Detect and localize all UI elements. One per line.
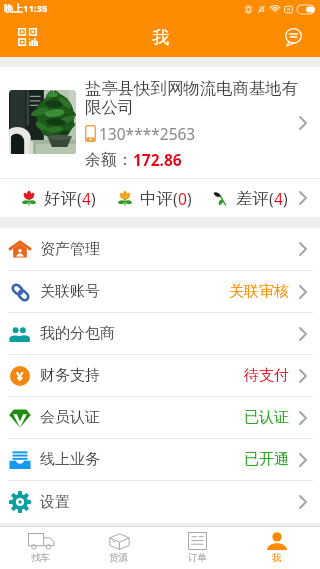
staticText: 已认证 bbox=[244, 408, 289, 427]
button[interactable]: 盐亭县快到网物流电商基地有限公司 bbox=[0, 67, 320, 178]
button[interactable]: ¥ bbox=[0, 355, 320, 397]
staticText: 中评 bbox=[140, 188, 173, 209]
staticText: ) bbox=[187, 188, 192, 209]
staticText: ( bbox=[269, 188, 274, 209]
staticText: ( bbox=[173, 188, 178, 209]
button[interactable]: 资产管理 bbox=[0, 228, 320, 271]
button[interactable]: 找车 bbox=[2, 527, 80, 569]
staticText: 172.86 bbox=[133, 149, 182, 170]
staticText: ¥ bbox=[16, 367, 24, 385]
staticText: 财务支持 bbox=[40, 366, 244, 385]
staticText: 订单 bbox=[188, 552, 208, 564]
button[interactable]: 差评 bbox=[202, 179, 298, 217]
staticText: ) bbox=[91, 188, 96, 209]
staticText: 关联审核 bbox=[229, 282, 289, 301]
staticText: 我的分包商 bbox=[40, 324, 298, 343]
staticText: 已开通 bbox=[244, 450, 289, 469]
staticText: 4 bbox=[274, 188, 283, 209]
button[interactable]: 线上业务 bbox=[0, 439, 320, 481]
button[interactable]: 订单 bbox=[158, 527, 237, 569]
staticText: 4 bbox=[82, 188, 91, 209]
staticText: 130****2563 bbox=[99, 123, 196, 144]
staticText: 货源 bbox=[109, 552, 129, 564]
button[interactable]: 消息 bbox=[273, 17, 313, 57]
staticText: 0 bbox=[178, 188, 187, 209]
staticText: 会员认证 bbox=[40, 408, 244, 427]
button[interactable]: 货源 bbox=[80, 527, 158, 569]
staticText: 余额： bbox=[85, 150, 133, 170]
staticText: 我 bbox=[152, 27, 169, 48]
button[interactable]: 我 bbox=[237, 527, 316, 569]
staticText: 好评 bbox=[44, 188, 77, 209]
staticText: 关联账号 bbox=[40, 282, 229, 301]
staticText: 线上业务 bbox=[40, 450, 244, 469]
staticText: 我 bbox=[272, 552, 282, 564]
staticText: 待支付 bbox=[244, 366, 289, 385]
staticText: ) bbox=[283, 188, 288, 209]
button[interactable]: 中评 bbox=[106, 179, 202, 217]
button[interactable]: 扫一扫 bbox=[7, 17, 47, 57]
button[interactable]: 设置 bbox=[0, 481, 320, 523]
button[interactable]: 我的分包商 bbox=[0, 313, 320, 355]
button[interactable]: 好评 bbox=[10, 179, 106, 217]
button[interactable]: 关联账号 bbox=[0, 271, 320, 313]
staticText: 差评 bbox=[236, 188, 269, 209]
staticText: 晚上11:35 bbox=[4, 2, 48, 15]
staticText: 找车 bbox=[31, 552, 51, 564]
staticText: 设置 bbox=[40, 493, 298, 512]
staticText: 盐亭县快到网物流电商基地有限公司 bbox=[85, 78, 301, 118]
staticText: 资产管理 bbox=[40, 240, 298, 259]
staticText: ( bbox=[77, 188, 82, 209]
button[interactable]: 会员认证 bbox=[0, 397, 320, 439]
